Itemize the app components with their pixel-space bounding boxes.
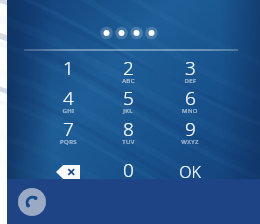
button[interactable]: 0 bbox=[99, 157, 157, 187]
button[interactable]: 2 bbox=[99, 55, 157, 85]
staticText: PQRS bbox=[60, 138, 77, 146]
button[interactable]: Backspace bbox=[42, 159, 94, 185]
staticText: 2 bbox=[123, 55, 134, 81]
button[interactable]: 1 bbox=[39, 55, 97, 85]
button[interactable]: 9 bbox=[161, 116, 219, 146]
staticText: JKL bbox=[123, 107, 133, 115]
staticText: 8 bbox=[123, 116, 134, 142]
staticText: 7 bbox=[63, 116, 74, 142]
button[interactable]: 8 bbox=[99, 116, 157, 146]
staticText: OK bbox=[179, 161, 201, 183]
staticText: 0 bbox=[123, 157, 134, 183]
staticText: 3 bbox=[185, 55, 196, 81]
staticText: 5 bbox=[123, 85, 134, 111]
staticText: DEF bbox=[184, 77, 197, 85]
staticText: GHI bbox=[62, 107, 75, 115]
staticText: 9 bbox=[185, 116, 196, 142]
staticText: MNO bbox=[182, 107, 198, 115]
button[interactable]: OK bbox=[164, 159, 216, 185]
staticText: 1 bbox=[63, 55, 74, 81]
staticText: ABC bbox=[122, 77, 135, 85]
staticText: TUV bbox=[122, 138, 135, 146]
button[interactable]: 7 bbox=[39, 116, 97, 146]
button[interactable]: Emergency call bbox=[18, 188, 46, 216]
staticText: 6 bbox=[185, 85, 196, 111]
button[interactable]: 3 bbox=[161, 55, 219, 85]
button[interactable]: 4 bbox=[39, 85, 97, 115]
staticText: 4 bbox=[63, 85, 74, 111]
staticText: WXYZ bbox=[181, 138, 199, 146]
button[interactable]: 6 bbox=[161, 85, 219, 115]
button[interactable]: 5 bbox=[99, 85, 157, 115]
